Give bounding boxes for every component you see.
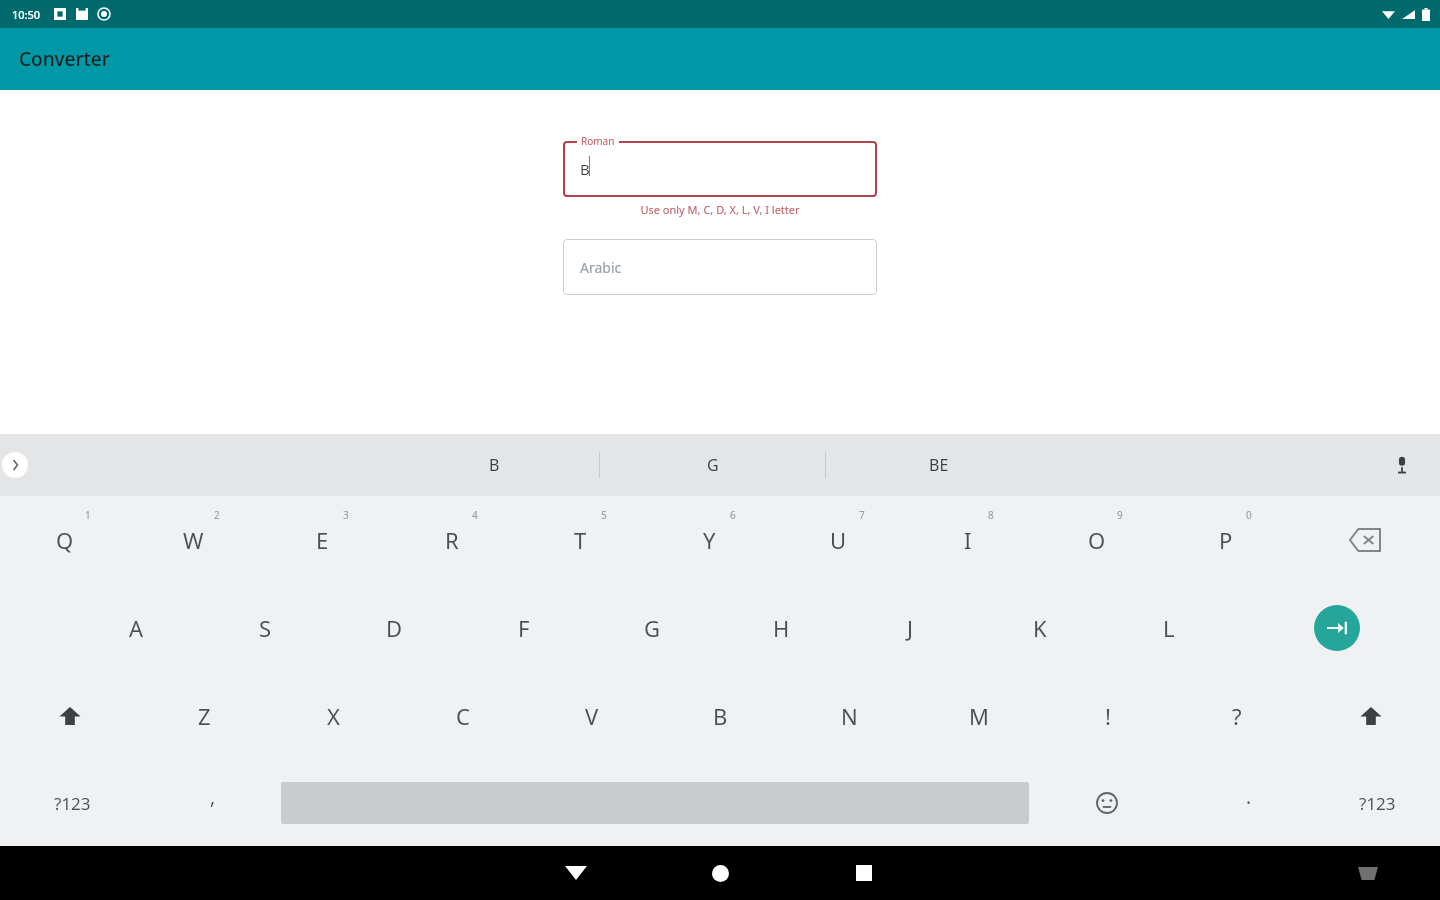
staticText: I — [964, 525, 972, 555]
staticText: W — [183, 525, 204, 555]
button[interactable]: B — [389, 434, 599, 496]
staticText: ! — [1105, 701, 1111, 731]
staticText: B — [713, 701, 728, 731]
staticText: B — [580, 159, 590, 179]
button[interactable]: Expand suggestions — [2, 452, 28, 478]
staticText: R — [445, 525, 459, 555]
button[interactable]: V — [527, 672, 656, 760]
button[interactable]: L — [1104, 584, 1233, 672]
staticText: U — [830, 525, 847, 555]
staticText: BE — [929, 454, 949, 476]
staticText: O — [1088, 525, 1106, 555]
staticText: D — [386, 613, 403, 643]
button[interactable]: B — [563, 141, 877, 197]
button[interactable]: Backspace — [1290, 496, 1440, 584]
staticText: 6 — [730, 508, 736, 522]
button[interactable]: Q — [0, 496, 129, 584]
staticText: 2 — [214, 508, 220, 522]
staticText: ?123 — [1359, 792, 1396, 815]
button[interactable]: G — [600, 434, 825, 496]
staticText: G — [644, 613, 661, 643]
staticText: ?123 — [54, 792, 91, 815]
button[interactable]: ! — [1043, 672, 1172, 760]
staticText: 1 — [85, 508, 91, 522]
button[interactable]: D — [330, 584, 459, 672]
staticText: K — [1033, 613, 1047, 643]
staticText: ? — [1232, 701, 1242, 731]
staticText: Roman — [581, 134, 615, 148]
staticText: 0 — [1246, 508, 1252, 522]
staticText: A — [129, 613, 144, 643]
staticText: L — [1163, 613, 1175, 643]
button[interactable]: T — [516, 496, 645, 584]
staticText: Q — [56, 525, 74, 555]
button[interactable]: Home — [696, 849, 744, 897]
button[interactable]: BE — [826, 434, 1051, 496]
button[interactable]: Converter — [0, 28, 1440, 90]
button[interactable]: Shift — [0, 672, 140, 760]
button[interactable]: K — [975, 584, 1104, 672]
staticText: T — [574, 525, 587, 555]
staticText: 4 — [472, 508, 478, 522]
staticText: 10:50 — [12, 7, 41, 22]
staticText: E — [316, 525, 329, 555]
button[interactable]: O — [1032, 496, 1161, 584]
button[interactable]: E — [258, 496, 387, 584]
staticText: M — [969, 701, 989, 731]
button[interactable]: ?123 — [1314, 760, 1440, 846]
button[interactable]: X — [269, 672, 398, 760]
button[interactable]: Recent apps — [840, 849, 888, 897]
staticText: H — [773, 613, 790, 643]
staticText: G — [707, 454, 719, 476]
staticText: 9 — [1117, 508, 1123, 522]
staticText: J — [907, 613, 914, 643]
button[interactable]: W — [129, 496, 258, 584]
staticText: , — [210, 784, 216, 810]
staticText: Use only M, C, D, X, L, V, I letter — [563, 202, 877, 217]
button[interactable]: Hide keyboard — [552, 849, 600, 897]
staticText: Arabic — [580, 258, 622, 277]
button[interactable]: H — [717, 584, 846, 672]
staticText: 7 — [859, 508, 865, 522]
button[interactable]: B — [656, 672, 785, 760]
staticText: C — [456, 701, 470, 731]
staticText: P — [1219, 525, 1233, 555]
button[interactable]: Arabic — [563, 239, 877, 295]
button[interactable]: N — [785, 672, 914, 760]
button[interactable]: Y — [645, 496, 774, 584]
button[interactable]: C — [398, 672, 527, 760]
button[interactable]: Switch keyboard — [1348, 853, 1388, 893]
button[interactable]: Voice input — [1388, 451, 1416, 479]
staticText: Z — [198, 701, 211, 731]
staticText: . — [1246, 784, 1252, 810]
button[interactable]: S — [201, 584, 330, 672]
staticText: Y — [703, 525, 716, 555]
staticText: N — [841, 701, 858, 731]
staticText: X — [327, 701, 340, 731]
button[interactable]: F — [459, 584, 588, 672]
button[interactable]: M — [914, 672, 1043, 760]
button[interactable]: Shift — [1301, 672, 1440, 760]
staticText: B — [489, 454, 500, 476]
button[interactable]: ?123 — [0, 760, 145, 846]
button[interactable]: G — [588, 584, 717, 672]
button[interactable]: U — [774, 496, 903, 584]
staticText: S — [259, 613, 272, 643]
button[interactable]: P — [1161, 496, 1290, 584]
staticText: V — [585, 701, 599, 731]
button[interactable]: ? — [1172, 672, 1301, 760]
button[interactable]: I — [903, 496, 1032, 584]
button[interactable]: Z — [140, 672, 269, 760]
button[interactable]: R — [387, 496, 516, 584]
button[interactable]: Next field — [1233, 584, 1440, 672]
staticText: Converter — [19, 46, 110, 72]
staticText: 8 — [988, 508, 994, 522]
button[interactable]: A — [72, 584, 201, 672]
staticText: 3 — [343, 508, 349, 522]
button[interactable]: J — [846, 584, 975, 672]
button[interactable]: , — [145, 760, 281, 846]
button[interactable]: Emoji — [1029, 760, 1184, 846]
staticText: 5 — [601, 508, 607, 522]
